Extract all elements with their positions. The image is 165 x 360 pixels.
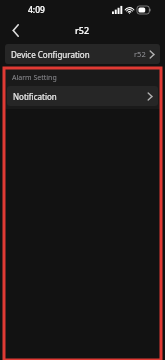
- staticText: Notification: [13, 91, 57, 102]
- button[interactable]: Back: [6, 20, 26, 40]
- staticText: Device Configuration: [11, 49, 90, 60]
- button[interactable]: Notification: [7, 86, 158, 106]
- button[interactable]: Device Configuration: [5, 44, 160, 64]
- staticText: 4:09: [28, 4, 45, 16]
- staticText: r52: [134, 49, 146, 59]
- staticText: r52: [75, 24, 90, 36]
- staticText: Alarm Setting: [12, 73, 57, 83]
